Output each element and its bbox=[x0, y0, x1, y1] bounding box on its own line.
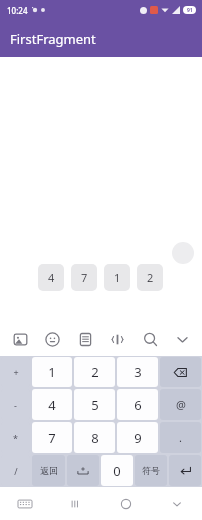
staticText: 5 bbox=[91, 396, 99, 414]
staticText: 1 bbox=[48, 363, 56, 381]
button[interactable]: 0 bbox=[101, 455, 133, 486]
button[interactable]: Search bbox=[136, 325, 164, 353]
button[interactable]: Emoji bbox=[38, 325, 66, 353]
staticText: 4 bbox=[48, 396, 56, 414]
button[interactable]: . bbox=[160, 422, 201, 453]
staticText: 91 bbox=[187, 7, 193, 14]
staticText: 2 bbox=[91, 363, 99, 381]
staticText: 6 bbox=[134, 396, 142, 414]
staticText: / bbox=[14, 465, 18, 477]
button[interactable]: Handle bbox=[172, 242, 194, 264]
staticText: @ bbox=[176, 397, 186, 412]
staticText: 8 bbox=[91, 429, 99, 447]
button[interactable]: 7 bbox=[71, 264, 97, 291]
button[interactable]: 8 bbox=[74, 422, 115, 453]
button[interactable]: Enter bbox=[169, 455, 201, 486]
button[interactable]: * bbox=[1, 422, 30, 453]
staticText: 7 bbox=[48, 429, 56, 447]
button[interactable]: 符号 bbox=[135, 455, 167, 486]
button[interactable]: Home bbox=[100, 487, 151, 520]
button[interactable]: - bbox=[1, 389, 30, 420]
staticText: FirstFragment bbox=[10, 30, 96, 48]
button[interactable]: Backspace bbox=[160, 357, 201, 387]
button[interactable]: 1 bbox=[32, 357, 72, 387]
button[interactable]: Space bbox=[67, 455, 99, 486]
staticText: * bbox=[13, 432, 18, 444]
staticText: 1 bbox=[114, 270, 121, 285]
button[interactable]: 4 bbox=[38, 264, 64, 291]
staticText: 3 bbox=[134, 363, 142, 381]
button[interactable]: 1 bbox=[104, 264, 130, 291]
button[interactable]: 7 bbox=[32, 422, 72, 453]
staticText: - bbox=[14, 399, 17, 411]
button[interactable]: Keyboard bbox=[0, 487, 50, 520]
button[interactable]: / bbox=[1, 455, 30, 486]
button[interactable]: 返回 bbox=[32, 455, 65, 486]
button[interactable]: 3 bbox=[117, 357, 158, 387]
staticText: 返回 bbox=[40, 465, 58, 476]
button[interactable]: @ bbox=[160, 389, 201, 420]
button[interactable]: Text cursor bbox=[103, 325, 131, 353]
button[interactable]: 6 bbox=[117, 389, 158, 420]
button[interactable]: Recents bbox=[50, 487, 100, 520]
button[interactable]: Collapse bbox=[168, 325, 196, 353]
button[interactable]: 4 bbox=[32, 389, 72, 420]
staticText: 2 bbox=[147, 270, 154, 285]
button[interactable]: + bbox=[1, 357, 30, 387]
button[interactable]: 2 bbox=[137, 264, 163, 291]
staticText: 符号 bbox=[142, 465, 160, 476]
button[interactable]: Clipboard bbox=[71, 325, 99, 353]
button[interactable]: 9 bbox=[117, 422, 158, 453]
staticText: . bbox=[179, 430, 182, 445]
button[interactable]: Sticker bbox=[6, 325, 34, 353]
staticText: 7 bbox=[81, 270, 88, 285]
staticText: 10:24 bbox=[7, 5, 28, 16]
button[interactable]: 2 bbox=[74, 357, 115, 387]
staticText: 9 bbox=[134, 429, 142, 447]
staticText: 0 bbox=[113, 462, 121, 480]
button[interactable]: Hide keyboard bbox=[151, 487, 202, 520]
staticText: + bbox=[13, 366, 19, 378]
button[interactable]: 5 bbox=[74, 389, 115, 420]
staticText: 4 bbox=[48, 270, 55, 285]
